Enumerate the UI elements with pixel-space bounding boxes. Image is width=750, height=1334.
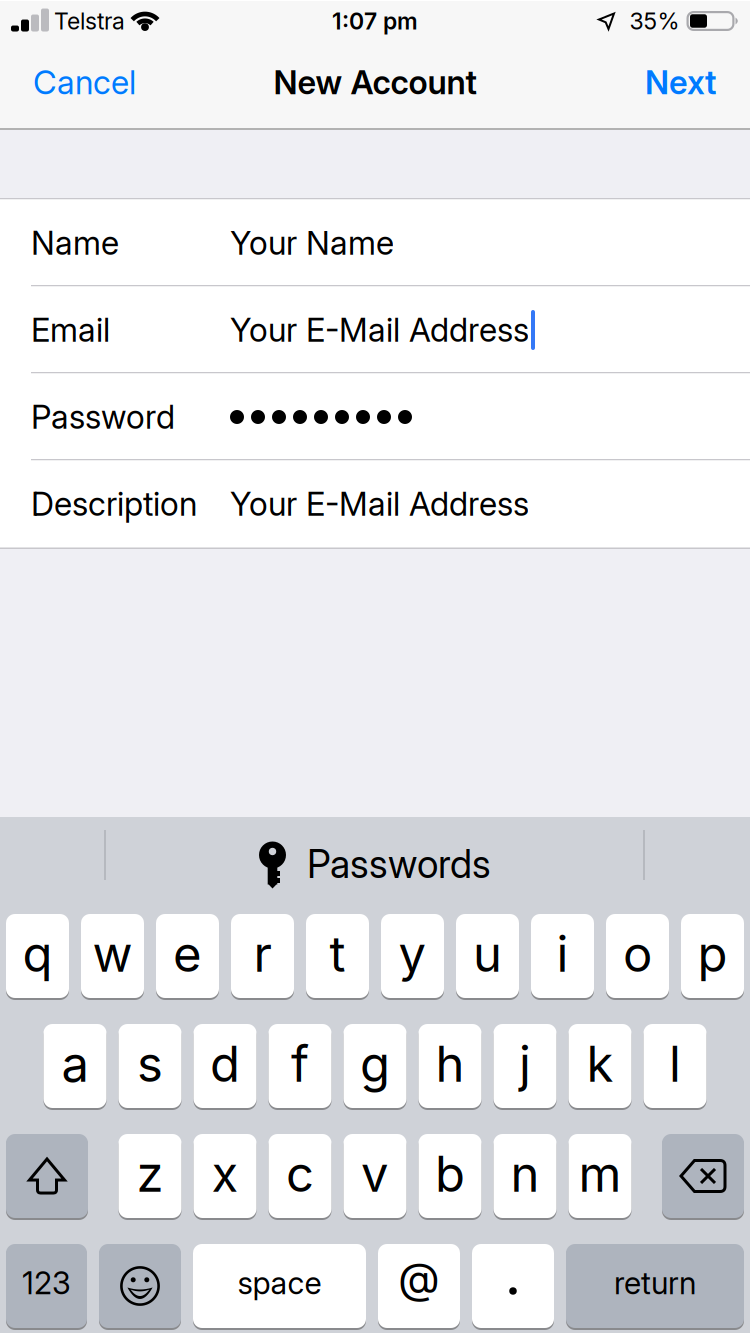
- staticText: l: [669, 1034, 681, 1094]
- button[interactable]: x: [193, 1133, 256, 1219]
- staticText: q: [22, 924, 52, 984]
- staticText: 123: [22, 1264, 71, 1302]
- button[interactable]: i: [531, 913, 594, 999]
- staticText: @: [398, 1252, 440, 1304]
- button[interactable]: return: [566, 1243, 744, 1329]
- staticText: y: [398, 924, 426, 984]
- staticText: h: [435, 1034, 464, 1094]
- button[interactable]: 123: [6, 1243, 87, 1329]
- staticText: 35%: [629, 7, 679, 35]
- button[interactable]: Next: [645, 63, 716, 102]
- staticText: g: [360, 1034, 390, 1094]
- staticText: Your E-Mail Address: [230, 484, 529, 524]
- staticText: Your E-Mail Address: [230, 310, 529, 350]
- staticText: o: [623, 924, 652, 984]
- button[interactable]: c: [268, 1133, 331, 1219]
- staticText: f: [291, 1034, 309, 1094]
- button[interactable]: y: [381, 913, 444, 999]
- staticText: d: [210, 1034, 240, 1094]
- button[interactable]: @: [378, 1243, 460, 1329]
- staticText: a: [61, 1034, 88, 1094]
- staticText: Password: [31, 397, 175, 437]
- button[interactable]: a: [43, 1023, 106, 1109]
- button[interactable]: q: [6, 913, 69, 999]
- button[interactable]: o: [606, 913, 669, 999]
- button[interactable]: Name: [0, 199, 750, 286]
- staticText: space: [237, 1264, 321, 1302]
- button[interactable]: space: [193, 1243, 366, 1329]
- button[interactable]: Emoji: [99, 1243, 181, 1329]
- button[interactable]: k: [568, 1023, 631, 1109]
- button[interactable]: h: [418, 1023, 481, 1109]
- staticText: Passwords: [307, 841, 491, 887]
- staticText: Description: [31, 484, 197, 524]
- staticText: e: [173, 924, 202, 984]
- button[interactable]: m: [568, 1133, 631, 1219]
- button[interactable]: j: [493, 1023, 556, 1109]
- button[interactable]: Password: [0, 373, 750, 460]
- staticText: Cancel: [33, 63, 136, 102]
- button[interactable]: n: [493, 1133, 556, 1219]
- button[interactable]: l: [643, 1023, 706, 1109]
- staticText: Email: [31, 310, 110, 350]
- button[interactable]: Passwords: [259, 831, 491, 878]
- staticText: w: [92, 924, 132, 984]
- button[interactable]: w: [81, 913, 144, 999]
- staticText: x: [211, 1144, 238, 1204]
- staticText: t: [329, 924, 345, 984]
- button[interactable]: b: [418, 1133, 481, 1219]
- staticText: i: [556, 924, 568, 984]
- button[interactable]: t: [306, 913, 369, 999]
- button[interactable]: v: [343, 1133, 406, 1219]
- staticText: v: [361, 1144, 389, 1204]
- button[interactable]: u: [456, 913, 519, 999]
- staticText: c: [286, 1144, 314, 1204]
- button[interactable]: s: [118, 1023, 181, 1109]
- button[interactable]: e: [156, 913, 219, 999]
- staticText: s: [137, 1034, 163, 1094]
- button[interactable]: Period: [472, 1243, 554, 1329]
- button[interactable]: f: [268, 1023, 331, 1109]
- button[interactable]: d: [193, 1023, 256, 1109]
- button[interactable]: Shift: [6, 1133, 88, 1219]
- staticText: z: [136, 1144, 163, 1204]
- staticText: Telstra: [54, 7, 125, 35]
- staticText: Your Name: [230, 223, 394, 263]
- staticText: r: [253, 924, 271, 984]
- staticText: n: [510, 1144, 539, 1204]
- staticText: k: [586, 1034, 613, 1094]
- staticText: u: [473, 924, 502, 984]
- staticText: j: [519, 1034, 531, 1094]
- staticText: Name: [31, 223, 119, 263]
- button[interactable]: p: [681, 913, 744, 999]
- staticText: New Account: [273, 63, 476, 102]
- button[interactable]: Description: [0, 460, 750, 547]
- button[interactable]: Email: [0, 286, 750, 373]
- staticText: 1:07 pm: [332, 7, 418, 35]
- staticText: b: [435, 1144, 465, 1204]
- button[interactable]: r: [231, 913, 294, 999]
- button[interactable]: Delete: [662, 1133, 744, 1219]
- staticText: return: [614, 1264, 696, 1302]
- button[interactable]: g: [343, 1023, 406, 1109]
- button[interactable]: Cancel: [33, 63, 136, 102]
- staticText: m: [578, 1144, 621, 1204]
- staticText: Next: [645, 63, 716, 102]
- staticText: p: [697, 924, 727, 984]
- button[interactable]: z: [118, 1133, 181, 1219]
